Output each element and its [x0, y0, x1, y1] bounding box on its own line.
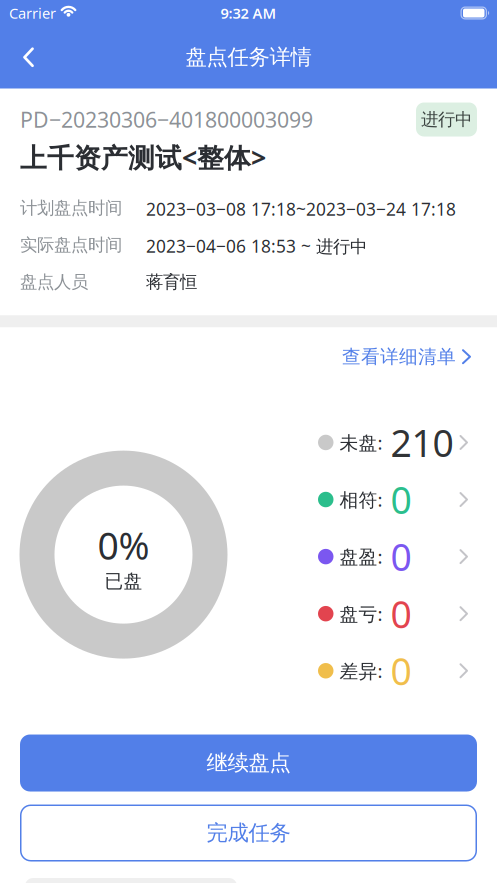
staticText: 盘亏: [339, 601, 382, 626]
staticText: 9:32 AM [220, 3, 276, 23]
button[interactable]: 相符: [318, 475, 468, 524]
staticText: 相符: [339, 487, 382, 512]
staticText: 盘点人员 [20, 271, 88, 293]
staticText: 0 [390, 532, 411, 581]
staticText: 盘盈: [339, 544, 382, 569]
button[interactable]: 查看详细清单 [342, 345, 471, 368]
staticText: 实际盘点时间 [20, 234, 122, 256]
staticText: PD−20230306−401800003099 [20, 105, 313, 134]
staticText: 0 [390, 646, 411, 696]
staticText: 查看详细清单 [342, 345, 456, 368]
staticText: 上千资产测试<整体> [20, 139, 266, 175]
staticText: 已盘 [104, 570, 142, 593]
staticText: 0% [97, 520, 149, 570]
button[interactable]: 继续盘点 [20, 734, 477, 791]
staticText: 0 [390, 589, 411, 638]
staticText: 完成任务 [206, 820, 290, 846]
staticText: 盘点任务详情 [185, 44, 311, 70]
button[interactable]: Back [0, 31, 34, 83]
button[interactable]: 差异: [318, 646, 468, 696]
button[interactable]: 完成任务 [20, 804, 477, 861]
button[interactable]: 盘盈: [318, 532, 468, 581]
staticText: 未盘: [339, 430, 382, 455]
staticText: 继续盘点 [206, 750, 290, 776]
staticText: 蒋育恒 [146, 271, 197, 293]
staticText: 进行中 [421, 109, 472, 130]
staticText: 计划盘点时间 [20, 197, 122, 219]
staticText: 210 [390, 418, 453, 467]
staticText: 0 [390, 475, 411, 524]
staticText: 2023−03−08 17:18~2023−03−24 17:18 [146, 197, 456, 220]
button[interactable]: 盘亏: [318, 589, 468, 638]
staticText: Carrier [9, 3, 56, 23]
staticText: 差异: [339, 658, 382, 683]
staticText: 2023−04−06 18:53 ~ 进行中 [146, 234, 367, 257]
button[interactable]: 未盘: [318, 418, 468, 467]
